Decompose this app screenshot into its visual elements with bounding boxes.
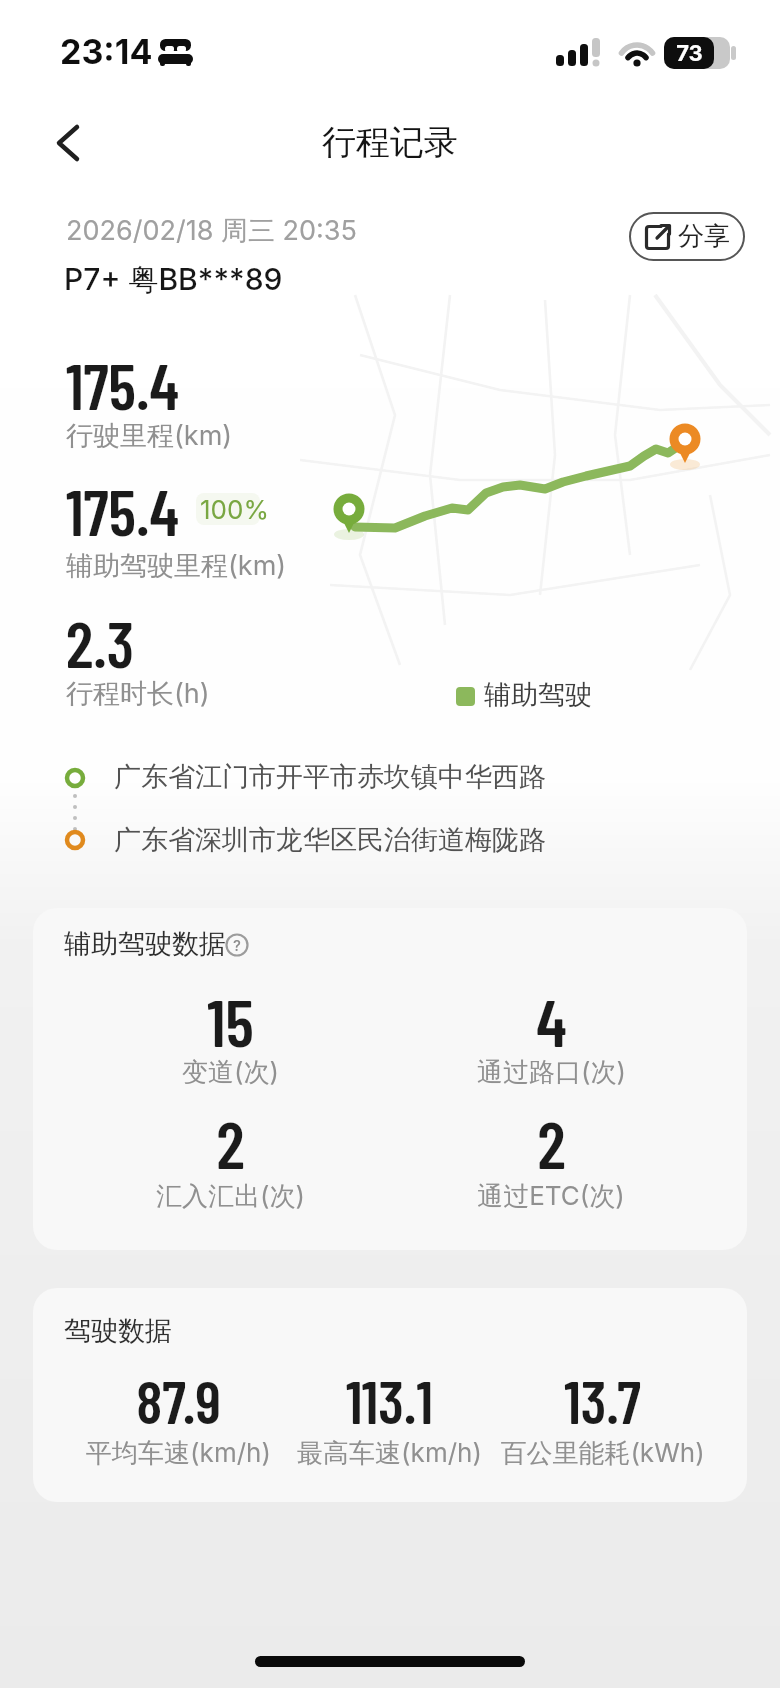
staticText: 87.9 (136, 1364, 221, 1436)
staticText: 广东省深圳市龙华区民治街道梅陇路 (114, 823, 546, 857)
staticText: 2.3 (66, 604, 134, 681)
staticText: 100% (200, 494, 269, 525)
staticText: 175.4 (66, 472, 179, 549)
staticText: 行程记录 (322, 121, 458, 164)
staticText: 广东省江门市开平市赤坎镇中华西路 (114, 760, 546, 794)
staticText: 百公里能耗(kWh) (500, 1437, 705, 1470)
staticText: 驾驶数据 (64, 1314, 172, 1348)
staticText: 13.7 (564, 1364, 641, 1436)
staticText: ? (233, 936, 241, 954)
staticText: 变道(次) (182, 1056, 279, 1089)
staticText: 4 (536, 981, 567, 1060)
staticText: 通过路口(次) (477, 1056, 626, 1089)
staticText: 辅助驾驶 (484, 678, 592, 712)
staticText: 平均车速(km/h) (86, 1437, 271, 1470)
staticText: 73 (676, 40, 703, 67)
staticText: 行驶里程(km) (66, 419, 233, 453)
button[interactable]: 分享 (629, 212, 745, 261)
staticText: 2 (537, 1103, 566, 1182)
staticText: 通过ETC(次) (477, 1180, 625, 1213)
staticText: 2026/02/18 周三 20:35 (66, 214, 357, 248)
staticText: 行程时长(h) (66, 677, 210, 711)
staticText: 113.1 (346, 1364, 433, 1436)
staticText: P7+ 粤BB***89 (64, 261, 283, 299)
staticText: 175.4 (66, 346, 179, 423)
staticText: 23:14 (60, 31, 153, 72)
staticText: 辅助驾驶数据 (64, 927, 226, 961)
staticText: 分享 (678, 220, 730, 253)
button[interactable]: ? (225, 933, 249, 957)
button[interactable] (40, 115, 96, 171)
staticText: 最高车速(km/h) (297, 1437, 482, 1470)
staticText: 辅助驾驶里程(km) (66, 549, 287, 583)
staticText: 2 (216, 1103, 245, 1182)
staticText: 汇入汇出(次) (156, 1180, 305, 1213)
staticText: 15 (207, 981, 254, 1060)
